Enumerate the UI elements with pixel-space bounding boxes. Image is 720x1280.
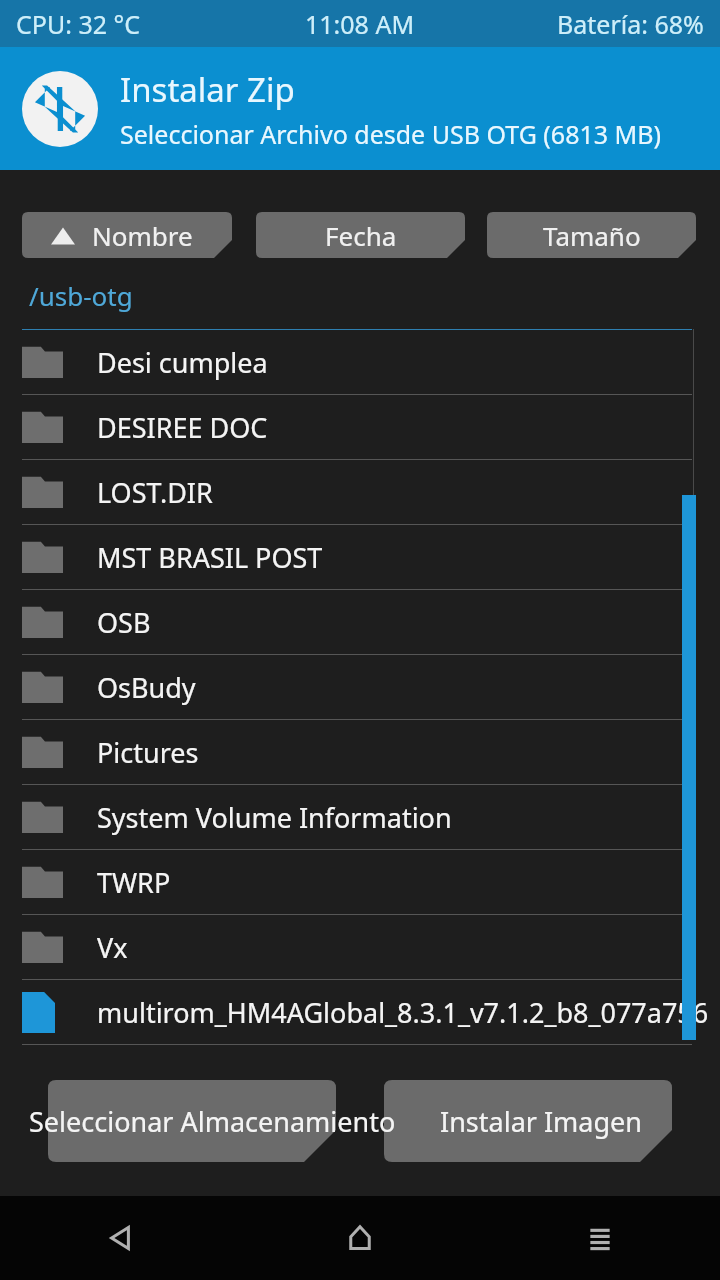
button[interactable]: Recent apps bbox=[480, 1196, 720, 1280]
staticText: Nombre bbox=[92, 218, 193, 253]
staticText: Instalar Zip bbox=[120, 67, 295, 112]
button[interactable]: Desi cumplea bbox=[0, 330, 720, 394]
staticText: System Volume Information bbox=[97, 799, 452, 836]
button[interactable]: Pictures bbox=[0, 720, 720, 784]
staticText: OSB bbox=[97, 604, 151, 641]
button[interactable]: Fecha bbox=[256, 212, 465, 258]
button[interactable]: Tamaño bbox=[487, 212, 696, 258]
button[interactable]: DESIREE DOC bbox=[0, 395, 720, 459]
staticText: multirom_HM4AGlobal_8.3.1_v7.1.2_b8_077a… bbox=[97, 994, 720, 1031]
button[interactable] bbox=[48, 1080, 336, 1162]
button[interactable]: MST BRASIL POST bbox=[0, 525, 720, 589]
staticText: LOST.DIR bbox=[97, 474, 213, 511]
button[interactable] bbox=[384, 1080, 672, 1162]
staticText: Fecha bbox=[325, 218, 397, 253]
staticText: Seleccionar Almacenamiento bbox=[29, 1103, 396, 1140]
staticText: Batería: 68% bbox=[557, 7, 704, 41]
button[interactable]: System Volume Information bbox=[0, 785, 720, 849]
staticText: Tamaño bbox=[543, 218, 641, 253]
button[interactable]: Instalar Zip bbox=[0, 47, 720, 170]
staticText: CPU: 32 °C bbox=[16, 7, 141, 41]
button[interactable]: Home bbox=[240, 1196, 480, 1280]
button[interactable]: Back bbox=[0, 1196, 240, 1280]
staticText: /usb-otg bbox=[29, 278, 133, 313]
button[interactable]: LOST.DIR bbox=[0, 460, 720, 524]
staticText: Pictures bbox=[97, 734, 199, 771]
staticText: Vx bbox=[97, 929, 128, 966]
staticText: Seleccionar Archivo desde USB OTG (6813 … bbox=[120, 117, 661, 151]
button[interactable]: Vx bbox=[0, 915, 720, 979]
button[interactable]: TWRP bbox=[0, 850, 720, 914]
button[interactable]: multirom_HM4AGlobal_8.3.1_v7.1.2_b8_077a… bbox=[0, 980, 720, 1044]
staticText: DESIREE DOC bbox=[97, 409, 268, 446]
button[interactable]: OSB bbox=[0, 590, 720, 654]
staticText: TWRP bbox=[97, 864, 171, 901]
staticText: Desi cumplea bbox=[97, 344, 268, 381]
button[interactable]: OsBudy bbox=[0, 655, 720, 719]
staticText: OsBudy bbox=[97, 669, 196, 706]
button[interactable]: Nombre bbox=[22, 212, 232, 258]
staticText: MST BRASIL POST bbox=[97, 539, 323, 576]
staticText: Instalar Imagen bbox=[440, 1103, 643, 1140]
staticText: 11:08 AM bbox=[305, 7, 415, 41]
